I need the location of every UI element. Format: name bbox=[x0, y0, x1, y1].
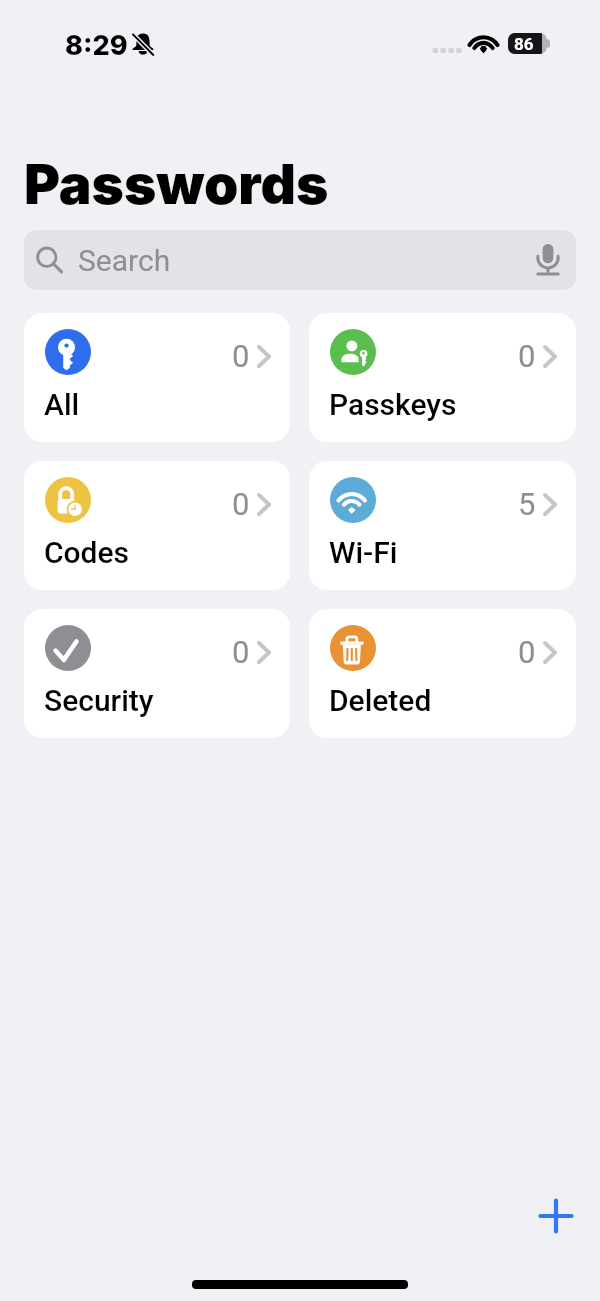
staticText: 0 bbox=[518, 338, 536, 374]
button[interactable]: 0 bbox=[309, 609, 576, 738]
button[interactable]: 0 bbox=[24, 313, 290, 442]
staticText: Passwords bbox=[24, 151, 329, 218]
staticText: 86 bbox=[514, 34, 534, 54]
button[interactable]: 0 bbox=[309, 313, 576, 442]
staticText: Wi-Fi bbox=[329, 535, 398, 570]
staticText: Search bbox=[78, 243, 171, 278]
staticText: 8:29 bbox=[65, 29, 128, 62]
staticText: Security bbox=[44, 683, 154, 718]
staticText: 0 bbox=[232, 338, 250, 374]
staticText: 0 bbox=[232, 486, 250, 522]
staticText: Codes bbox=[44, 535, 130, 570]
staticText: Passkeys bbox=[329, 387, 457, 422]
button[interactable]: Add password bbox=[529, 1189, 583, 1243]
staticText: 5 bbox=[518, 486, 536, 522]
button[interactable]: 0 bbox=[24, 461, 290, 590]
staticText: All bbox=[44, 387, 80, 422]
button[interactable]: 0 bbox=[24, 609, 290, 738]
button[interactable]: Search bbox=[24, 230, 576, 290]
button[interactable]: 5 bbox=[309, 461, 576, 590]
staticText: 0 bbox=[232, 634, 250, 670]
staticText: Deleted bbox=[329, 683, 432, 718]
button[interactable]: Voice search bbox=[531, 238, 565, 282]
staticText: 0 bbox=[518, 634, 536, 670]
